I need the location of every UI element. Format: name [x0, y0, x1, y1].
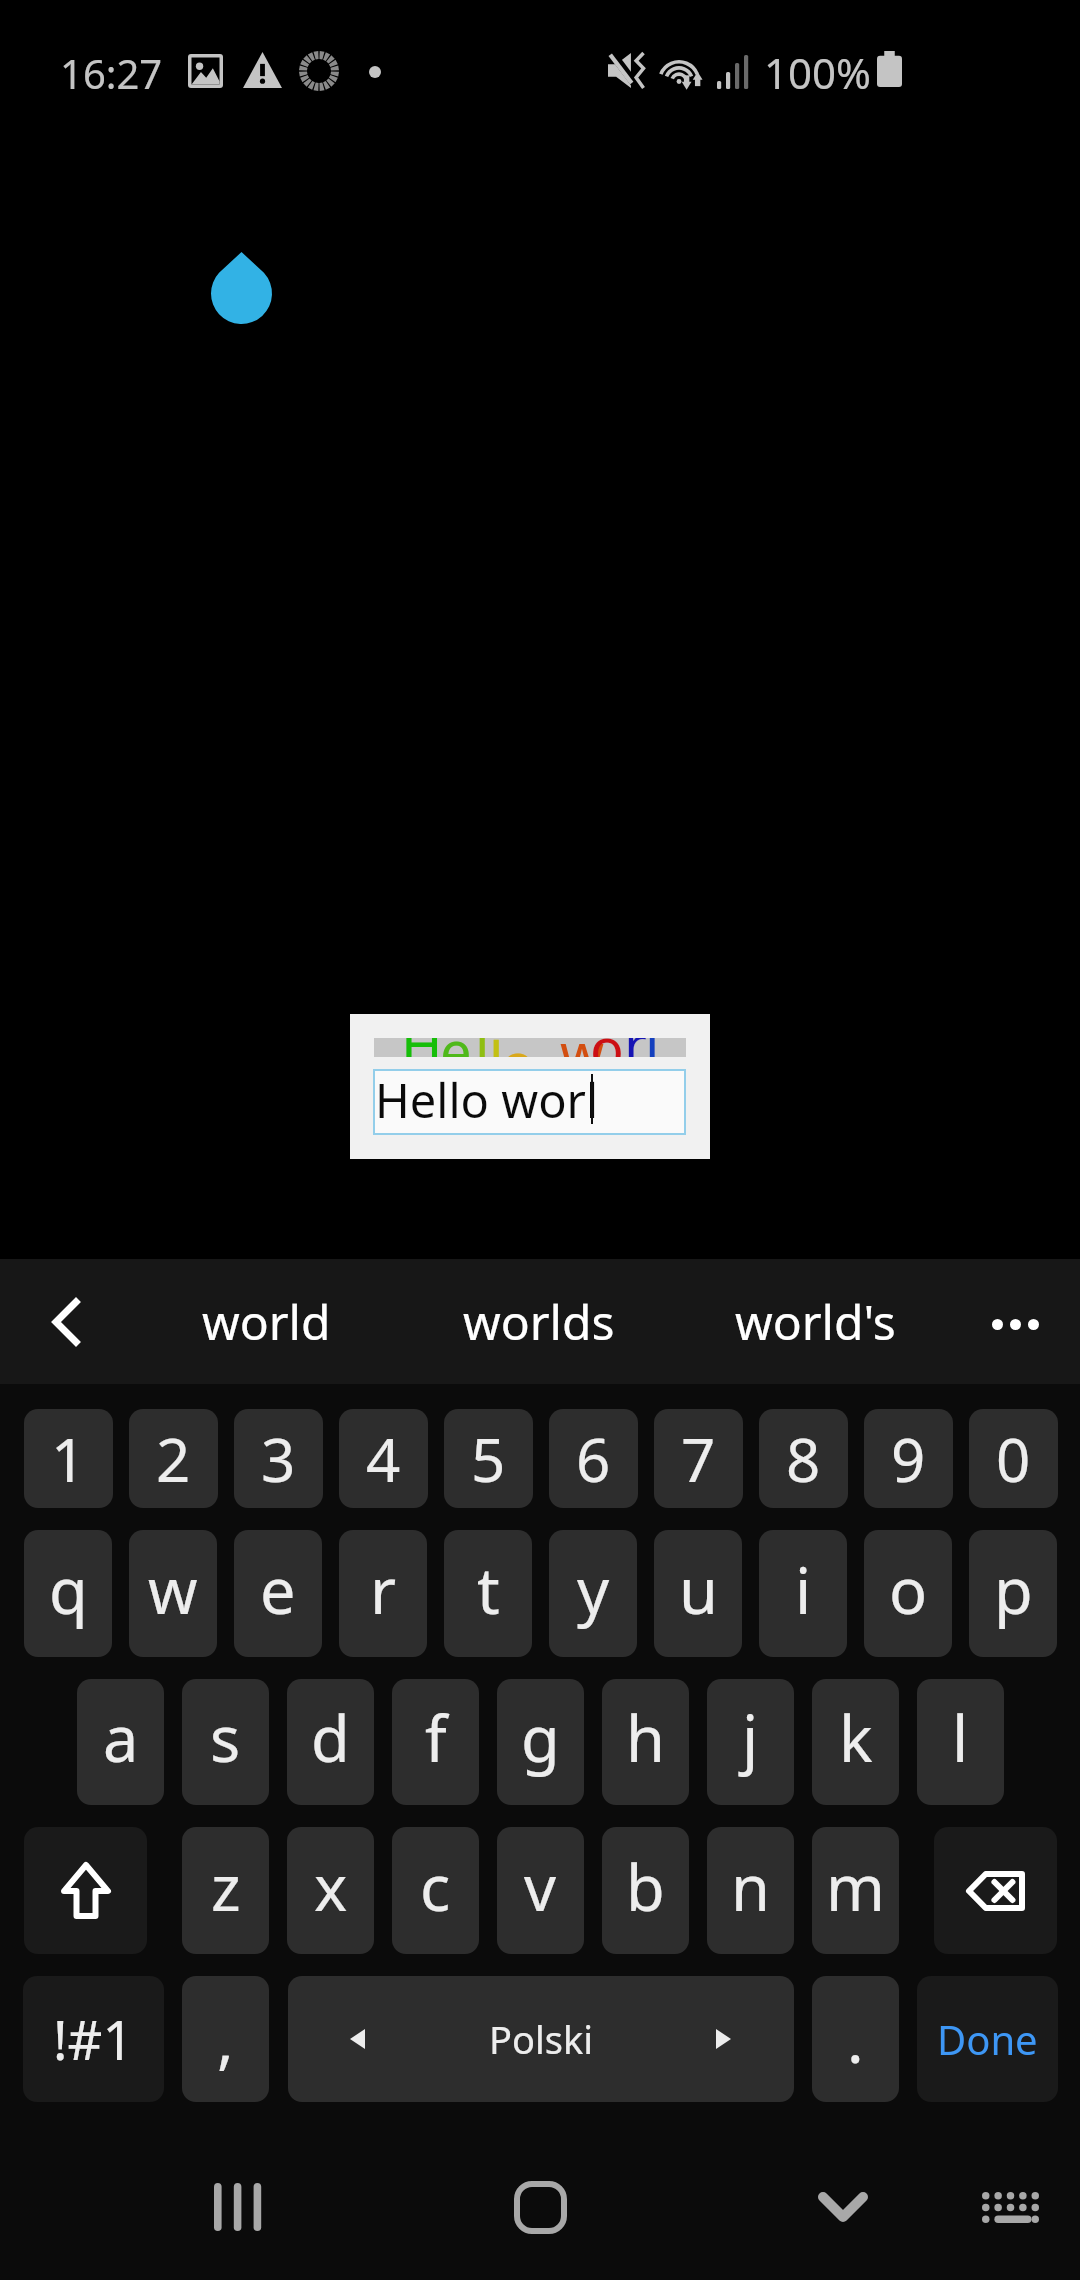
button[interactable]: m — [812, 1827, 899, 1954]
button[interactable]: x — [287, 1827, 374, 1954]
staticText: 5 — [471, 1418, 506, 1500]
staticText: 3 — [261, 1418, 296, 1500]
button[interactable]: a — [77, 1679, 164, 1805]
button[interactable]: z — [182, 1827, 269, 1954]
staticText: l — [952, 1695, 969, 1781]
button[interactable]: !#1 — [23, 1976, 164, 2102]
button[interactable]: j — [707, 1679, 794, 1805]
button[interactable]: c — [392, 1827, 479, 1954]
staticText: 9 — [891, 1418, 926, 1500]
button[interactable]: u — [654, 1530, 742, 1657]
button[interactable]: Hide keyboard — [783, 2147, 903, 2267]
staticText: n — [731, 1844, 770, 1930]
staticText: r — [624, 1038, 648, 1057]
staticText: e — [440, 1038, 472, 1057]
button[interactable]: 0 — [969, 1409, 1058, 1508]
staticText: i — [795, 1547, 812, 1633]
staticText: y — [577, 1547, 610, 1633]
staticText: Hello worl — [375, 1068, 599, 1132]
staticText: 16:27 — [60, 46, 163, 100]
button[interactable]: Change keyboard — [950, 2147, 1070, 2267]
button[interactable]: h — [602, 1679, 689, 1805]
button[interactable]: 8 — [759, 1409, 848, 1508]
staticText: b — [626, 1844, 665, 1930]
button[interactable]: g — [497, 1679, 584, 1805]
staticText: r — [370, 1547, 397, 1633]
staticText: s — [210, 1695, 241, 1781]
button[interactable]: world — [150, 1259, 382, 1384]
staticText: 100% — [764, 44, 871, 101]
button[interactable]: l — [917, 1679, 1004, 1805]
button[interactable]: n — [707, 1827, 794, 1954]
button[interactable]: i — [759, 1530, 847, 1657]
button[interactable]: Home — [480, 2147, 600, 2267]
staticText: k — [839, 1695, 873, 1781]
button[interactable]: v — [497, 1827, 584, 1954]
button[interactable]: More suggestions — [960, 1259, 1070, 1384]
staticText: f — [425, 1695, 447, 1781]
button[interactable]: world's — [700, 1259, 930, 1384]
button[interactable]: 7 — [654, 1409, 743, 1508]
button[interactable]: r — [339, 1530, 427, 1657]
button[interactable]: p — [969, 1530, 1057, 1657]
staticText: w — [560, 1038, 605, 1057]
staticText: p — [994, 1547, 1033, 1633]
staticText: w — [148, 1547, 198, 1633]
staticText: 2 — [156, 1418, 191, 1500]
staticText: o — [889, 1547, 928, 1633]
button[interactable]: 5 — [444, 1409, 533, 1508]
button[interactable]: y — [549, 1530, 637, 1657]
staticText: t — [477, 1547, 500, 1633]
staticText: l — [475, 1038, 490, 1057]
staticText: !#1 — [53, 2002, 134, 2076]
staticText: 8 — [786, 1418, 821, 1500]
staticText: z — [211, 1844, 241, 1930]
button[interactable]: 3 — [234, 1409, 323, 1508]
staticText: Done — [937, 2012, 1038, 2066]
staticText: worlds — [463, 1289, 615, 1354]
button[interactable]: worlds — [424, 1259, 654, 1384]
staticText: o — [590, 1038, 624, 1057]
button[interactable]: d — [287, 1679, 374, 1805]
staticText: H — [401, 1038, 443, 1057]
staticText: h — [626, 1695, 665, 1781]
staticText: 1 — [51, 1418, 86, 1500]
button[interactable]: Shift — [24, 1827, 147, 1954]
button[interactable]: t — [444, 1530, 532, 1657]
button[interactable]: o — [864, 1530, 952, 1657]
staticText: u — [679, 1547, 718, 1633]
button[interactable]: e — [234, 1530, 322, 1657]
staticText: world — [202, 1289, 331, 1354]
button[interactable]: 2 — [129, 1409, 218, 1508]
button[interactable]: Polski — [288, 1976, 794, 2102]
staticText: j — [742, 1695, 759, 1781]
button[interactable]: 1 — [24, 1409, 113, 1508]
button[interactable]: f — [392, 1679, 479, 1805]
staticText: g — [521, 1695, 560, 1781]
button[interactable]: k — [812, 1679, 899, 1805]
button[interactable]: , — [182, 1976, 269, 2102]
staticText: m — [826, 1844, 885, 1930]
button[interactable]: Done — [917, 1976, 1058, 2102]
button[interactable]: 4 — [339, 1409, 428, 1508]
button[interactable]: Recent apps — [178, 2147, 298, 2267]
button[interactable]: 9 — [864, 1409, 953, 1508]
button[interactable]: q — [24, 1530, 112, 1657]
button[interactable]: . — [812, 1976, 899, 2102]
staticText: e — [260, 1547, 296, 1633]
button[interactable]: Previous suggestions — [20, 1259, 112, 1384]
staticText: . — [847, 1997, 864, 2081]
button[interactable]: s — [182, 1679, 269, 1805]
staticText: c — [420, 1844, 451, 1930]
button[interactable]: w — [129, 1530, 217, 1657]
staticText: l — [645, 1038, 660, 1057]
staticText: a — [103, 1695, 139, 1781]
staticText: Polski — [489, 2013, 594, 2065]
staticText: 4 — [366, 1418, 401, 1500]
button[interactable]: Backspace — [934, 1827, 1057, 1954]
staticText: 0 — [996, 1418, 1031, 1500]
button[interactable]: 6 — [549, 1409, 638, 1508]
button[interactable]: b — [602, 1827, 689, 1954]
staticText: , — [217, 1997, 234, 2081]
staticText: q — [49, 1547, 88, 1633]
